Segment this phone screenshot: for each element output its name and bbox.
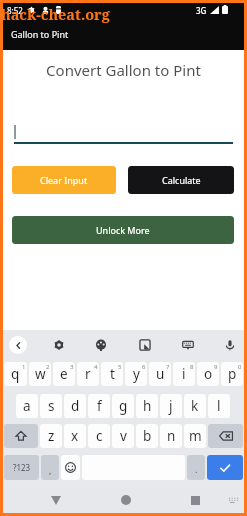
- staticText: v: [120, 427, 127, 445]
- staticText: 9: [214, 363, 218, 371]
- staticText: x: [71, 427, 79, 445]
- staticText: Unlock More: [96, 224, 150, 236]
- staticText: 7: [166, 363, 170, 371]
- button[interactable]: Unlock More: [12, 216, 234, 244]
- staticText: u: [156, 365, 165, 383]
- staticText: i: [182, 365, 186, 383]
- staticText: 8:52: [7, 5, 23, 16]
- button[interactable]: v: [112, 424, 134, 448]
- staticText: Calculate: [162, 174, 201, 186]
- staticText: s: [48, 397, 55, 415]
- button[interactable]: Close keyboard: [9, 336, 27, 354]
- staticText: w: [35, 365, 46, 383]
- staticText: 0: [238, 363, 242, 371]
- staticText: y: [133, 365, 140, 383]
- button[interactable]: t: [101, 362, 123, 386]
- button[interactable]: Back: [42, 488, 70, 512]
- button[interactable]: ,: [41, 455, 59, 480]
- staticText: m: [189, 427, 202, 445]
- button[interactable]: s: [40, 394, 62, 418]
- button[interactable]: g: [112, 394, 134, 418]
- button[interactable]: e: [53, 362, 75, 386]
- button[interactable]: q: [4, 362, 27, 386]
- button[interactable]: Theme: [91, 335, 111, 355]
- button[interactable]: a: [16, 394, 38, 418]
- staticText: k: [191, 397, 199, 415]
- staticText: 6: [142, 363, 146, 371]
- staticText: p: [228, 365, 237, 383]
- button[interactable]: Stickers: [135, 335, 155, 355]
- staticText: ,: [49, 464, 52, 476]
- staticText: 4: [94, 363, 98, 371]
- staticText: f: [97, 397, 102, 415]
- staticText: b: [143, 427, 152, 445]
- button[interactable]: Backspace: [208, 424, 243, 448]
- button[interactable]: Recents: [182, 488, 208, 512]
- staticText: a: [23, 397, 31, 415]
- staticText: 3: [70, 363, 74, 371]
- button[interactable]: Hide keyboard: [223, 488, 242, 512]
- button[interactable]: j: [160, 394, 182, 418]
- staticText: Convert Gallon to Pint: [3, 60, 244, 80]
- staticText: l: [217, 397, 221, 415]
- staticText: 3G: [196, 5, 207, 16]
- button[interactable]: Enter: [207, 455, 243, 480]
- staticText: hack-cheat.org: [1, 4, 110, 24]
- button[interactable]: Calculate: [128, 166, 234, 194]
- button[interactable]: Shift: [4, 424, 38, 448]
- staticText: o: [204, 365, 213, 383]
- staticText: e: [60, 365, 68, 383]
- button[interactable]: z: [40, 424, 62, 448]
- staticText: z: [48, 427, 55, 445]
- staticText: n: [167, 427, 176, 445]
- button[interactable]: r: [77, 362, 99, 386]
- button[interactable]: .: [187, 455, 205, 480]
- button[interactable]: Settings: [49, 335, 69, 355]
- button[interactable]: h: [136, 394, 158, 418]
- button[interactable]: Home: [112, 488, 140, 512]
- staticText: ?123: [13, 462, 31, 473]
- staticText: Gallon to Pint: [11, 28, 69, 40]
- button[interactable]: y: [125, 362, 147, 386]
- staticText: 5: [118, 363, 122, 371]
- button[interactable]: f: [88, 394, 110, 418]
- staticText: d: [71, 397, 80, 415]
- staticText: 2: [46, 363, 50, 371]
- button[interactable]: d: [64, 394, 86, 418]
- staticText: q: [11, 365, 20, 383]
- button[interactable]: i: [173, 362, 195, 386]
- staticText: 8: [190, 363, 194, 371]
- staticText: 1: [22, 363, 26, 371]
- staticText: j: [169, 397, 173, 415]
- staticText: h: [143, 397, 152, 415]
- button[interactable]: m: [184, 424, 206, 448]
- button[interactable]: Emoji: [61, 455, 80, 480]
- button[interactable]: x: [64, 424, 86, 448]
- button[interactable]: w: [29, 362, 51, 386]
- staticText: Clear Input: [40, 174, 88, 186]
- button[interactable]: p: [221, 362, 243, 386]
- button[interactable]: Keyboard layout: [178, 335, 198, 355]
- staticText: t: [110, 365, 115, 383]
- button[interactable]: Clear Input: [12, 166, 116, 194]
- button[interactable]: c: [88, 424, 110, 448]
- staticText: .: [195, 463, 198, 475]
- staticText: r: [85, 365, 91, 383]
- button[interactable]: k: [184, 394, 206, 418]
- staticText: c: [96, 427, 103, 445]
- button[interactable]: l: [208, 394, 230, 418]
- button[interactable]: Voice input: [220, 335, 240, 355]
- button[interactable]: b: [136, 424, 158, 448]
- button[interactable]: u: [149, 362, 171, 386]
- button[interactable]: n: [160, 424, 182, 448]
- staticText: g: [119, 397, 128, 415]
- button[interactable]: ?123: [4, 455, 39, 480]
- button[interactable]: o: [197, 362, 219, 386]
